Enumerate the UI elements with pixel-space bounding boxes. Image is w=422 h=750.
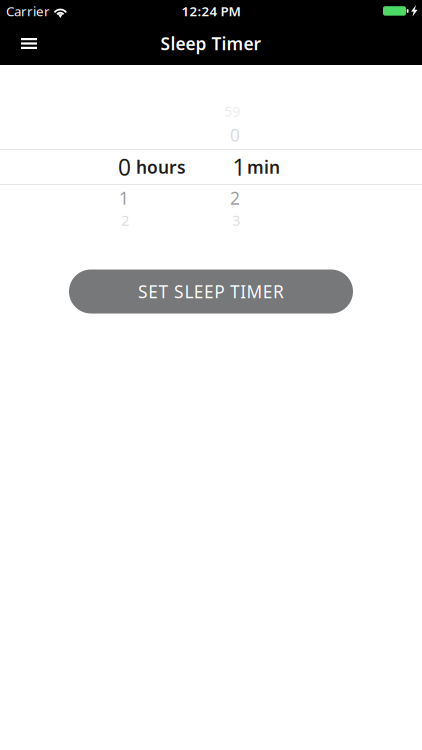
staticText: min [247,155,280,178]
staticText: 0 [118,152,131,182]
staticText: Sleep Timer [160,32,261,55]
staticText: 2 [230,186,240,209]
staticText: 2 [121,210,129,230]
staticText: 0 [230,123,240,146]
staticText: hours [136,155,186,178]
staticText: 59 [224,101,240,121]
staticText: SET SLEEP TIMER [138,280,284,303]
button[interactable]: SET SLEEP TIMER [69,269,353,313]
staticText: Carrier [6,2,50,20]
button[interactable]: Menu [7,22,51,64]
button[interactable]: Minutes [211,89,422,245]
staticText: 3 [232,210,240,230]
button[interactable]: Hours [0,89,211,245]
staticText: 1 [119,186,129,209]
staticText: 1 [232,152,245,182]
staticText: 12:24 PM [181,2,240,20]
